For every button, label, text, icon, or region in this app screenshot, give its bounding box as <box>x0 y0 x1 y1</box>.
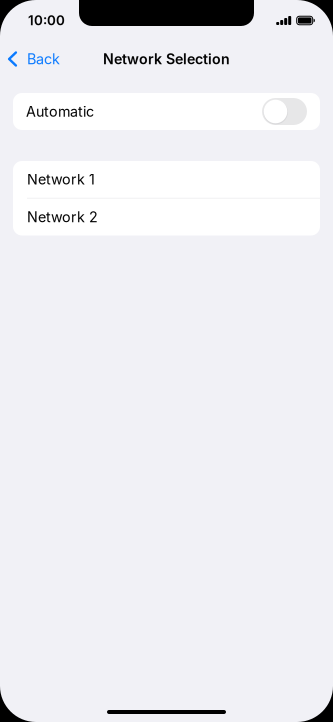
staticText: Back <box>27 50 60 68</box>
button[interactable]: Automatic <box>13 93 320 130</box>
button[interactable]: Back <box>0 41 70 77</box>
staticText: Network 2 <box>27 208 98 226</box>
staticText: Network 1 <box>27 171 95 188</box>
button[interactable]: Network 2 <box>13 199 320 236</box>
staticText: Automatic <box>26 103 94 120</box>
staticText: Network Selection <box>103 50 230 67</box>
button[interactable]: Network 1 <box>13 161 320 198</box>
staticText: 10:00 <box>28 12 65 28</box>
